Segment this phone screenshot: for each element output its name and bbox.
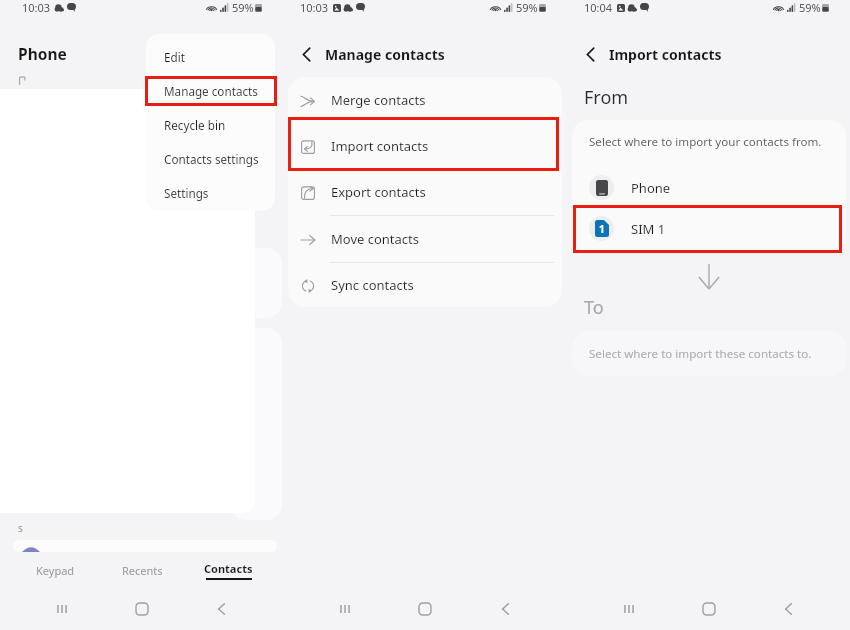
button[interactable]: Back — [203, 591, 239, 627]
staticText: Select where to import your contacts fro… — [589, 134, 822, 150]
button[interactable]: Edit — [146, 40, 275, 74]
button[interactable]: Back — [487, 591, 523, 627]
staticText: Contacts — [204, 561, 253, 576]
button[interactable]: Home — [407, 591, 443, 627]
staticText: Select where to import these contacts to… — [589, 346, 812, 362]
button[interactable]: Home — [124, 591, 160, 627]
staticText: Merge contacts — [331, 91, 426, 109]
staticText: Manage contacts — [164, 83, 258, 99]
staticText: 59% — [799, 0, 821, 15]
staticText: To — [584, 295, 604, 320]
button[interactable]: Back — [770, 591, 806, 627]
button[interactable]: Recycle bin — [146, 108, 275, 142]
staticText: 59% — [232, 0, 254, 15]
button[interactable]: Contacts — [185, 552, 271, 588]
staticText: Manage contacts — [325, 45, 445, 64]
staticText: Import contacts — [609, 45, 722, 64]
staticText: Recycle bin — [164, 117, 226, 133]
staticText: Settings — [164, 185, 209, 201]
staticText: 10:04 — [584, 0, 613, 15]
staticText: 1 — [599, 222, 605, 236]
staticText: Edit — [164, 49, 185, 65]
button[interactable]: Recent apps — [327, 591, 363, 627]
staticText: Phone — [631, 179, 671, 197]
button[interactable]: Settings — [146, 176, 275, 210]
staticText: s — [18, 521, 23, 535]
button[interactable]: Sync contacts — [288, 263, 562, 307]
staticText: SIM 1 — [631, 220, 666, 238]
button[interactable]: Import contacts — [288, 123, 562, 169]
staticText: Export contacts — [331, 183, 426, 201]
button[interactable]: Home — [691, 591, 727, 627]
button[interactable]: Merge contacts — [288, 77, 562, 123]
button[interactable]: Export contacts — [288, 169, 562, 215]
staticText: 10:03 — [22, 0, 51, 15]
button[interactable]: Recent apps — [611, 591, 647, 627]
button[interactable]: Back — [579, 43, 601, 65]
button[interactable]: Contacts settings — [146, 142, 275, 176]
button[interactable]: Back — [295, 43, 317, 65]
staticText: From — [584, 85, 629, 110]
button[interactable]: Manage contacts — [146, 74, 275, 108]
button[interactable]: Phone — [572, 167, 846, 208]
button[interactable]: Recent apps — [44, 591, 80, 627]
button[interactable]: 1 — [572, 208, 846, 249]
staticText: Import contacts — [331, 137, 429, 155]
staticText: 10:03 — [300, 0, 329, 15]
staticText: Recents — [122, 563, 163, 578]
staticText: Contacts settings — [164, 151, 259, 167]
staticText: Keypad — [36, 563, 75, 578]
staticText: 59% — [516, 0, 538, 15]
button[interactable]: Keypad — [12, 552, 99, 588]
button[interactable]: Move contacts — [288, 216, 562, 262]
button[interactable]: Recents — [99, 552, 185, 588]
staticText: Phone — [18, 43, 67, 64]
staticText: Sync contacts — [331, 276, 414, 294]
staticText: Move contacts — [331, 230, 419, 248]
